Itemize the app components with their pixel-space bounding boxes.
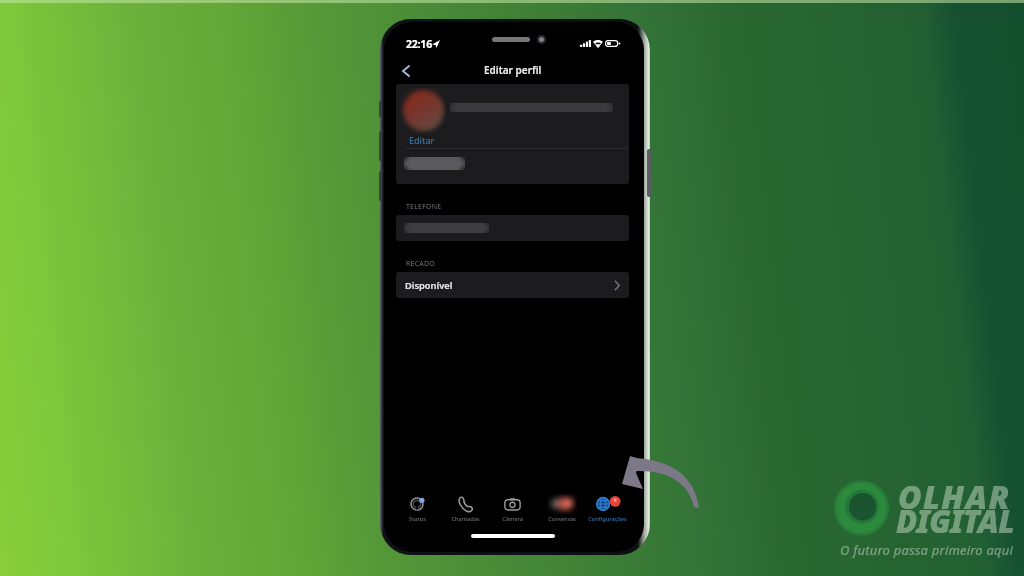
staticText: Câmera	[502, 515, 523, 523]
staticText: OLHAR	[898, 475, 1011, 519]
button[interactable]	[396, 215, 629, 241]
staticText: DIGITAL	[896, 500, 1014, 542]
button[interactable]: Chamadas	[439, 494, 491, 524]
staticText: Configurações	[588, 515, 627, 523]
button[interactable]: Status	[391, 494, 443, 524]
button[interactable]: Configurações	[581, 494, 633, 524]
button[interactable]: Conversas	[536, 494, 588, 524]
staticText: TELEFONE	[406, 202, 442, 212]
staticText: RECADO	[406, 259, 435, 269]
staticText: Status	[409, 515, 426, 523]
button[interactable]: Editar	[409, 134, 435, 146]
staticText: Editar perfil	[484, 63, 542, 77]
button[interactable]: Disponível	[396, 272, 629, 298]
button[interactable]: Voltar	[393, 62, 419, 88]
other: Seta apontando para Configurações	[0, 0, 1024, 576]
staticText: Chamadas	[451, 515, 480, 523]
staticText: Conversas	[548, 515, 576, 523]
button[interactable]: Câmera	[486, 494, 538, 524]
staticText: 22:16	[406, 37, 432, 51]
staticText: Disponível	[405, 279, 453, 292]
staticText: O futuro passa primeiro aqui	[840, 541, 1014, 559]
